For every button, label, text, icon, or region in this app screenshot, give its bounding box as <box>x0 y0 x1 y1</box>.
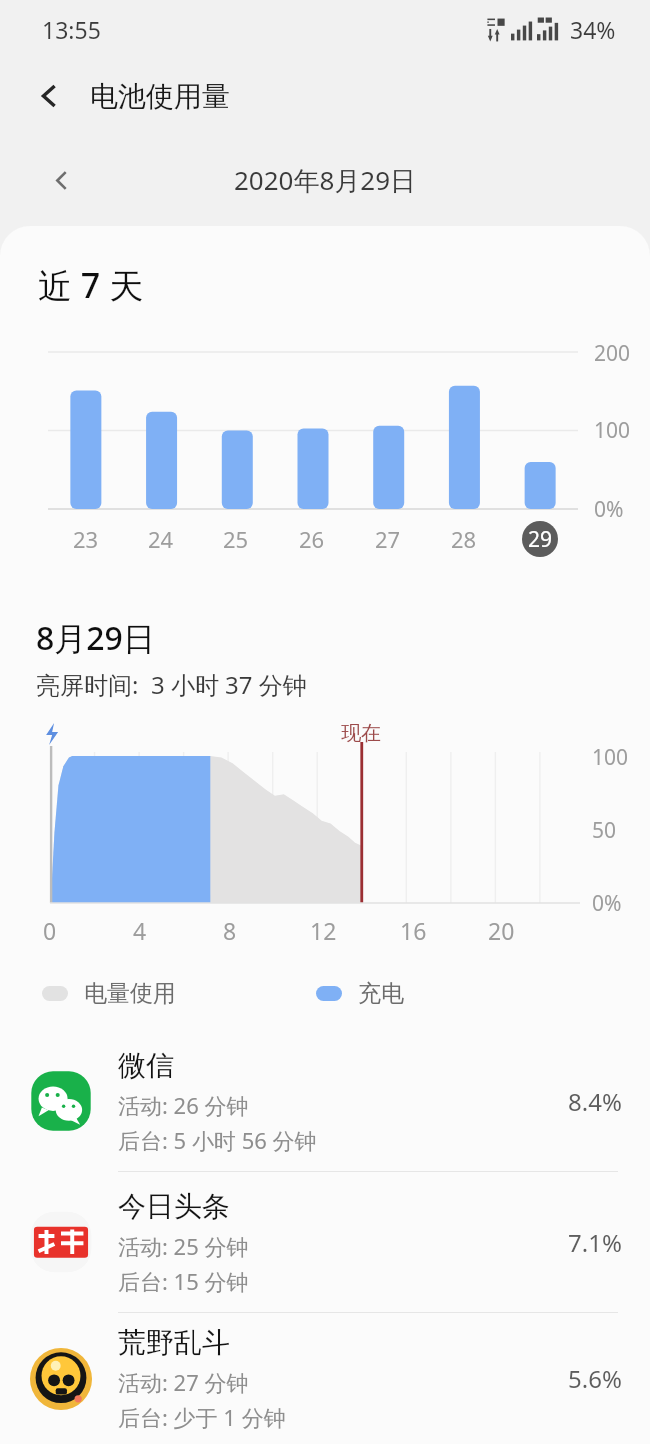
staticText: 27 <box>375 524 401 554</box>
staticText: 100 <box>592 743 629 772</box>
staticText: 0% <box>592 889 622 918</box>
staticText: 后台: 5 小时 56 分钟 <box>118 1125 317 1155</box>
staticText: 2020年8月29日 <box>234 162 417 198</box>
staticText: 5.6% <box>568 1362 622 1395</box>
button[interactable]: 29 <box>522 521 558 557</box>
staticText: 今日头条 <box>118 1189 230 1224</box>
staticText: 16 <box>400 915 427 946</box>
staticText: 后台: 少于 1 分钟 <box>118 1402 286 1432</box>
staticText: 近 7 天 <box>38 262 144 308</box>
staticText: 8月29日 <box>36 616 155 660</box>
staticText: 28 <box>451 524 477 554</box>
button[interactable]: Back <box>22 69 76 123</box>
staticText: 8 <box>223 915 237 946</box>
staticText: 100 <box>594 416 631 445</box>
staticText: 活动: 25 分钟 <box>118 1231 249 1261</box>
staticText: 充电 <box>358 979 404 1008</box>
staticText: 0 <box>43 915 57 946</box>
staticText: 25 <box>223 524 249 554</box>
staticText: 200 <box>594 339 631 368</box>
staticText: 电池使用量 <box>90 79 230 114</box>
staticText: 活动: 26 分钟 <box>118 1090 249 1120</box>
staticText: 荒野乱斗 <box>118 1325 230 1360</box>
staticText: 12 <box>310 915 337 946</box>
staticText: 20 <box>488 915 515 946</box>
staticText: 8.4% <box>568 1085 622 1118</box>
staticText: 4 <box>133 915 147 946</box>
button[interactable]: 荒野乱斗 <box>0 1313 650 1444</box>
staticText: 现在 <box>341 721 381 746</box>
button[interactable]: 微信 <box>0 1031 650 1171</box>
staticText: 0% <box>594 495 624 524</box>
staticText: 24 <box>148 524 174 554</box>
staticText: 34% <box>570 14 616 45</box>
staticText: 13:55 <box>42 14 101 45</box>
staticText: 23 <box>73 524 99 554</box>
button[interactable]: Previous day <box>34 153 88 207</box>
staticText: 后台: 15 分钟 <box>118 1266 249 1296</box>
staticText: 7.1% <box>568 1226 622 1259</box>
staticText: 26 <box>299 524 325 554</box>
staticText: 活动: 27 分钟 <box>118 1367 249 1397</box>
staticText: 亮屏时间: 3 小时 37 分钟 <box>36 668 307 701</box>
staticText: 50 <box>592 816 617 845</box>
staticText: 电量使用 <box>84 979 176 1008</box>
staticText: 29 <box>528 525 553 554</box>
staticText: 微信 <box>118 1048 174 1083</box>
button[interactable]: 今日头条 <box>0 1172 650 1312</box>
